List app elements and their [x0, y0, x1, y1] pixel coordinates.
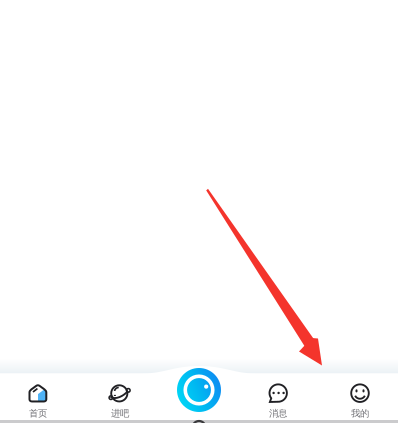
staticText: 进吧: [111, 408, 129, 419]
button[interactable]: 我的: [322, 381, 398, 421]
button[interactable]: 首页: [0, 381, 76, 421]
staticText: 消息: [269, 408, 287, 419]
button[interactable]: 消息: [240, 381, 316, 421]
staticText: 我的: [351, 408, 369, 419]
button[interactable]: 进吧: [82, 381, 158, 421]
staticText: 首页: [29, 408, 47, 419]
button[interactable]: Camera: [174, 365, 224, 415]
